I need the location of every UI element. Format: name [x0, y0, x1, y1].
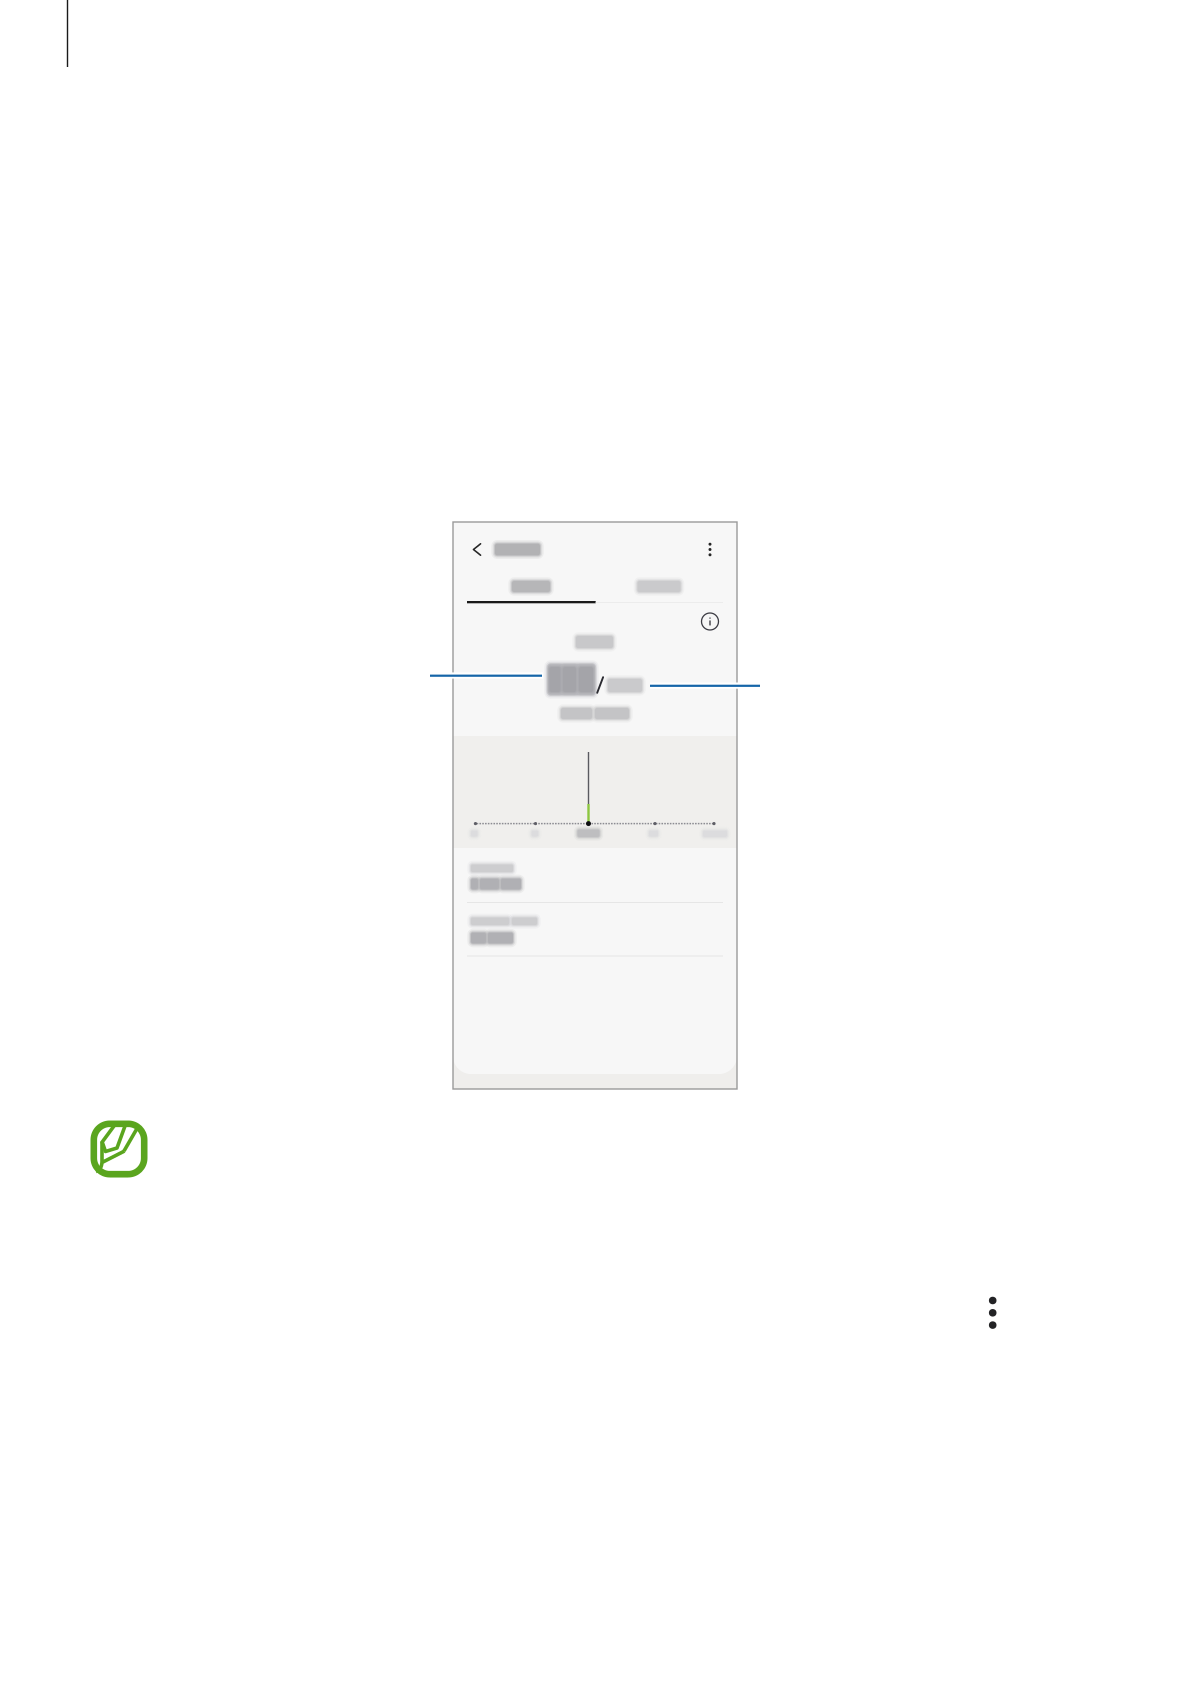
button[interactable] [490, 537, 545, 561]
button[interactable]: Information [695, 608, 725, 634]
button[interactable] [453, 855, 737, 902]
button[interactable] [453, 908, 737, 955]
button[interactable]: Back [462, 534, 492, 565]
button[interactable]: More options [696, 534, 724, 565]
button[interactable] [467, 570, 595, 601]
button[interactable] [595, 570, 723, 601]
